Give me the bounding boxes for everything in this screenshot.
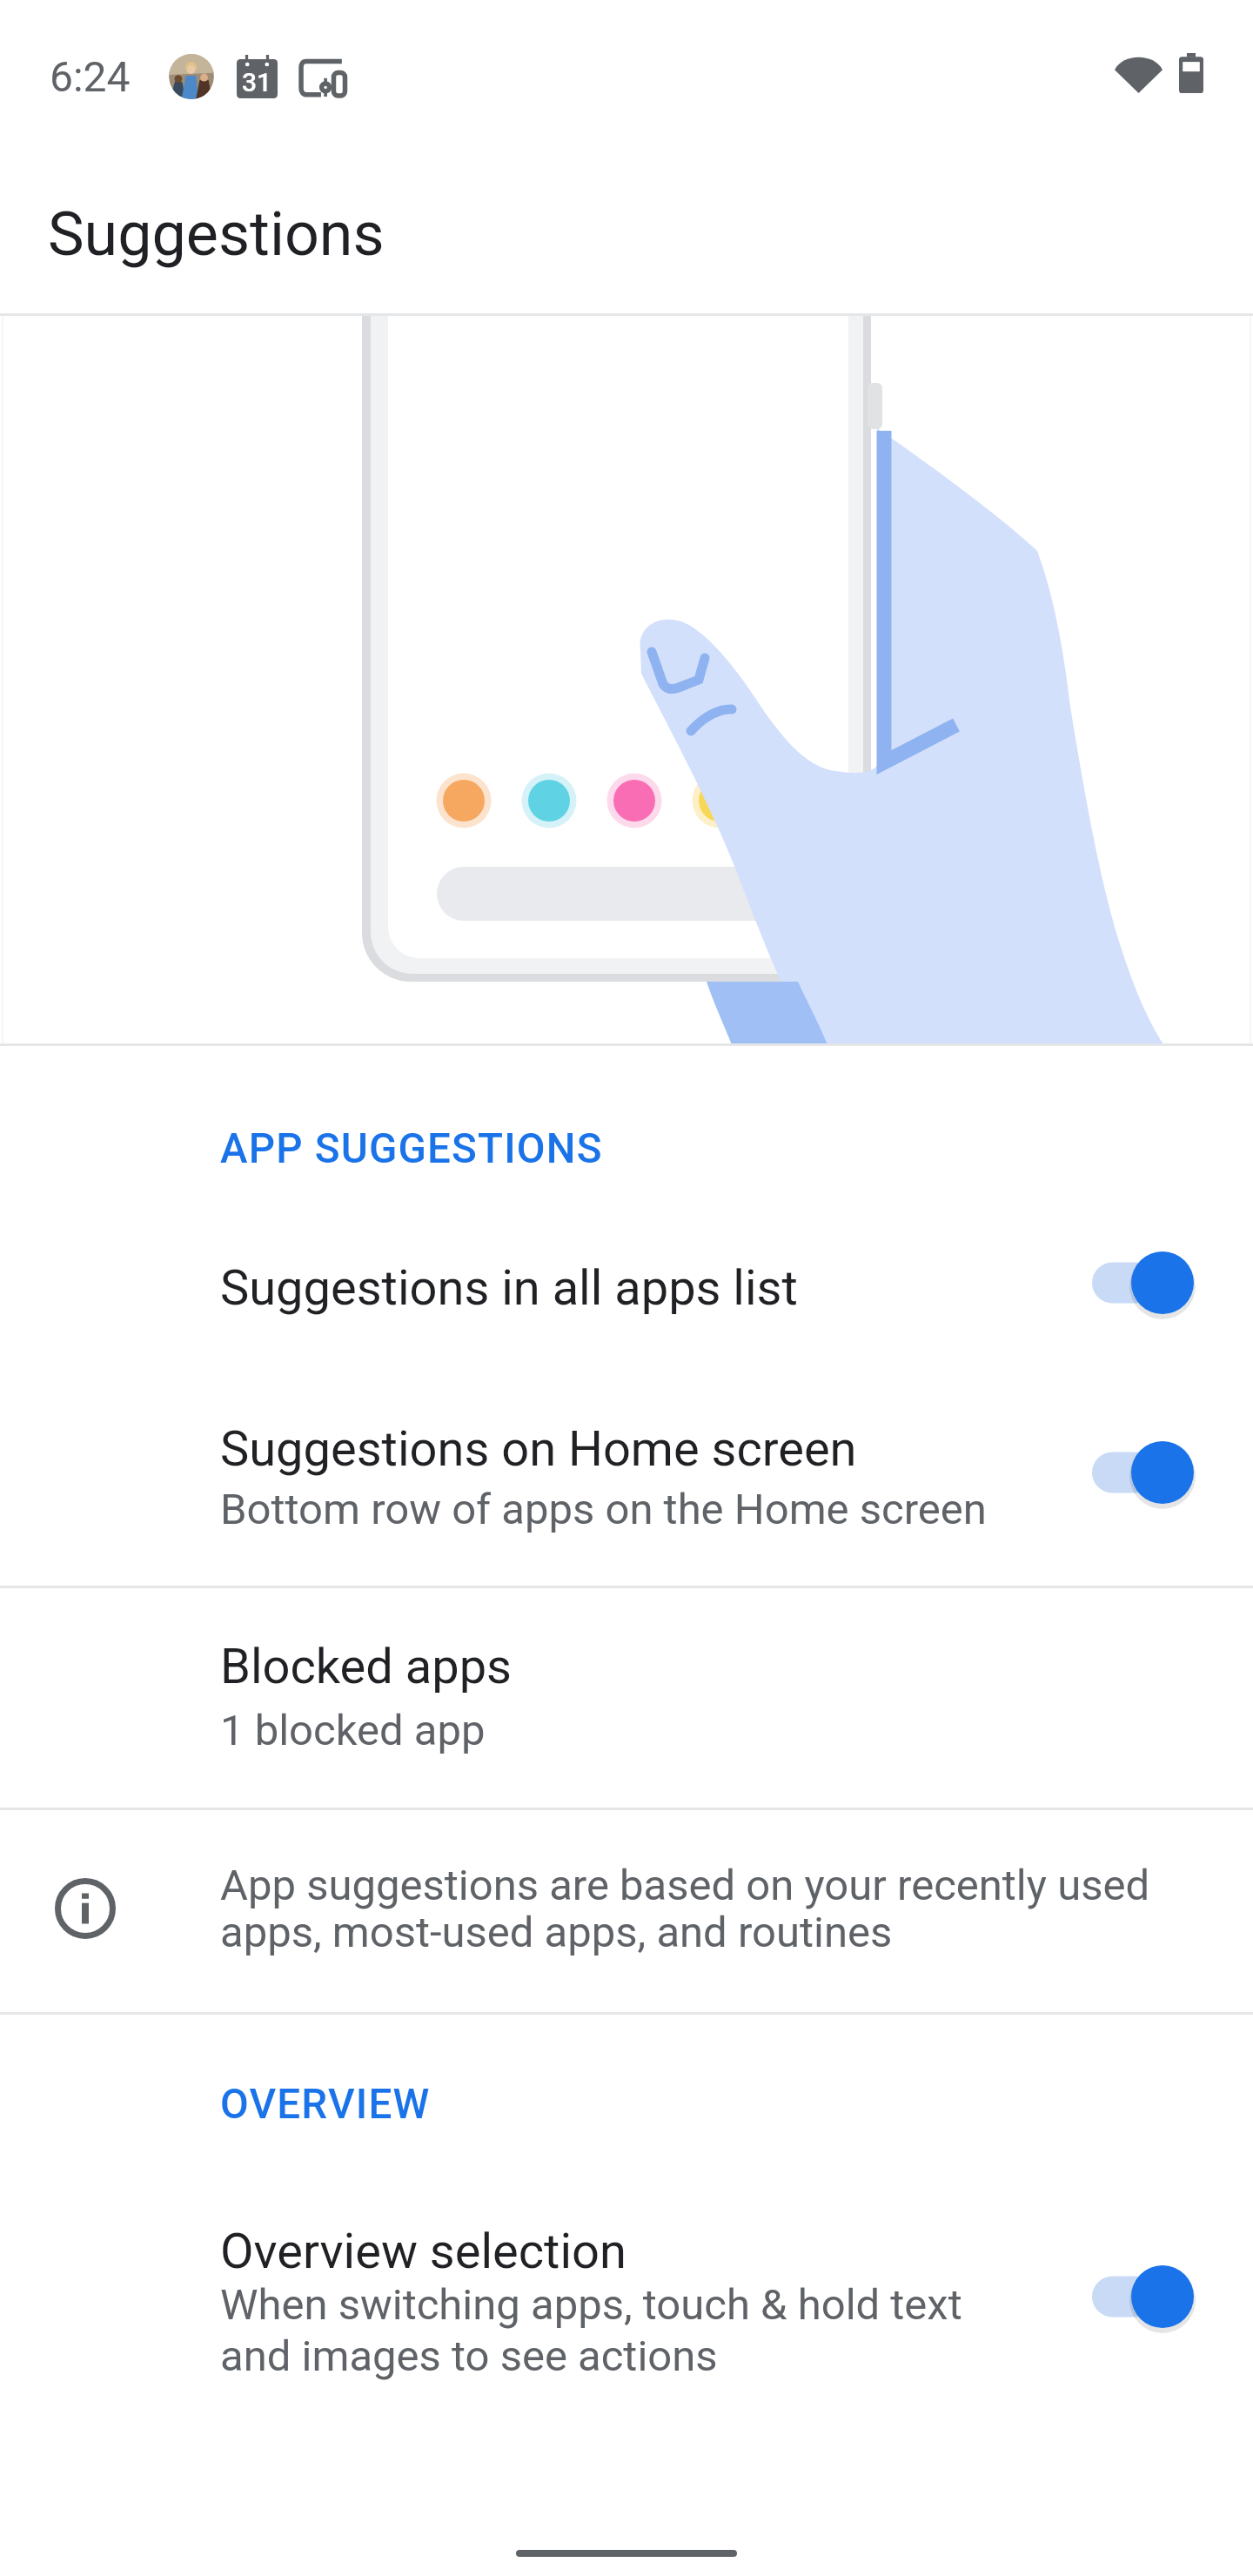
staticText: 6:24 [50,52,131,101]
staticText: APP SUGGESTIONS [220,1124,603,1173]
staticText: Bottom row of apps on the Home screen [220,1485,987,1534]
staticText: Suggestions in all apps list [220,1259,1092,1317]
staticText: 1 blocked app [220,1706,486,1755]
staticText: When switching apps, touch & hold text a… [220,2280,962,2381]
staticText: Suggestions on Home screen [220,1420,857,1478]
button[interactable]: Overview selection [0,2176,1253,2428]
staticText: Overview selection [220,2223,626,2280]
button[interactable]: Blocked apps [0,1596,1253,1814]
button[interactable]: Toggle [1092,1253,1195,1323]
button[interactable]: Suggestions on Home screen [0,1372,1253,1583]
staticText: Blocked apps [220,1638,513,1695]
button[interactable]: Toggle [1092,2267,1195,2337]
staticText: 31 [242,67,272,97]
staticText: Suggestions [48,198,385,270]
staticText: OVERVIEW [220,2080,431,2129]
button[interactable]: Toggle [1092,1443,1195,1513]
staticText: App suggestions are based on your recent… [220,1861,1150,1957]
button[interactable]: Suggestions in all apps list [0,1205,1253,1371]
